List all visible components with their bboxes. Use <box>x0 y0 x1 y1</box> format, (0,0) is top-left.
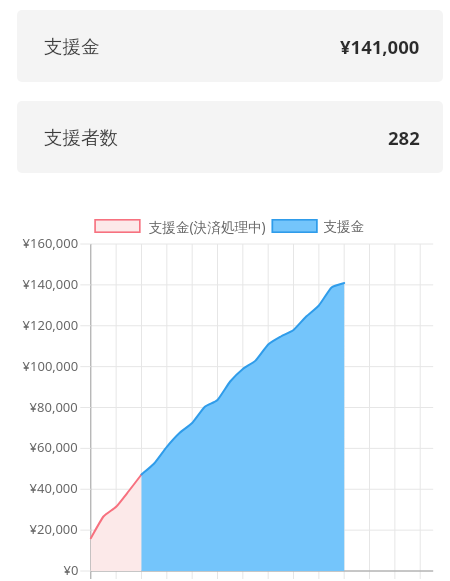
staticText: 282 <box>388 125 420 150</box>
staticText: ¥141,000 <box>340 34 420 59</box>
staticText: 支援金 <box>44 35 100 58</box>
button[interactable]: 支援金 <box>17 10 443 82</box>
button[interactable]: 支援者数 <box>17 101 443 173</box>
staticText: 支援者数 <box>44 126 118 149</box>
